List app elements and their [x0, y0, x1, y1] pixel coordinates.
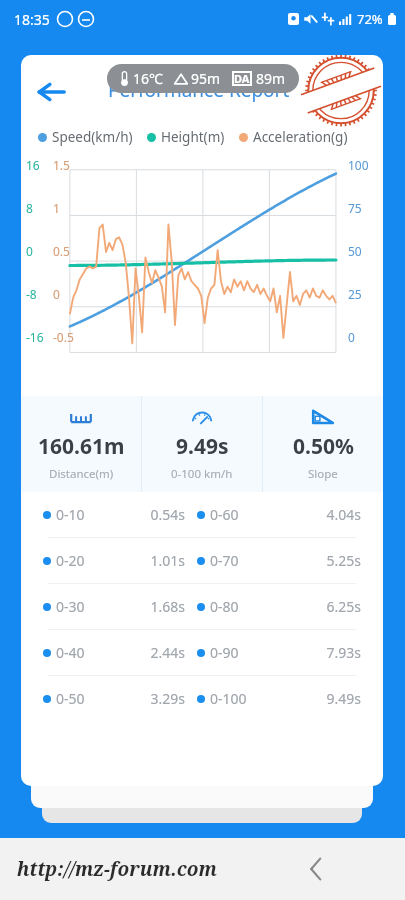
staticText: 3.29s — [129, 689, 185, 708]
staticText: 95m — [191, 69, 221, 88]
staticText: 89m — [256, 69, 286, 88]
staticText: 1.68s — [129, 597, 185, 616]
staticText: 7.93s — [305, 643, 361, 662]
staticText: 100 — [348, 157, 369, 173]
staticText: 6.25s — [305, 597, 361, 616]
button[interactable]: 16℃ — [107, 64, 299, 93]
button[interactable]: 0-20 — [21, 538, 383, 583]
button[interactable]: 0-40 — [21, 630, 383, 675]
staticText: 0.54s — [129, 505, 185, 524]
staticText: 0 — [26, 243, 33, 259]
staticText: 75 — [348, 200, 362, 216]
button[interactable]: 0-50 — [21, 676, 383, 721]
staticText: 16℃ — [133, 69, 163, 88]
staticText: -8 — [26, 286, 37, 302]
staticText: -16 — [26, 329, 44, 345]
staticText: 0-90 — [210, 643, 239, 662]
button[interactable]: 0-10 — [21, 492, 383, 537]
staticText: 18:35 — [14, 10, 50, 29]
staticText: 50 — [348, 243, 362, 259]
staticText: 9.49s — [305, 689, 361, 708]
staticText: Speed(km/h) — [52, 128, 133, 146]
button[interactable]: Back — [29, 70, 73, 114]
button[interactable]: Height(m) — [147, 128, 225, 146]
staticText: 0.5 — [53, 243, 70, 259]
staticText: 0-70 — [210, 551, 239, 570]
staticText: 0-20 — [56, 551, 85, 570]
button[interactable]: 9.49s — [142, 396, 262, 492]
staticText: 0-100 km/h — [171, 466, 233, 482]
staticText: 0-60 — [210, 505, 239, 524]
staticText: 1 — [53, 200, 60, 216]
staticText: 2.44s — [129, 643, 185, 662]
staticText: 0.50% — [293, 432, 354, 461]
staticText: 8 — [26, 200, 33, 216]
staticText: Acceleration(g) — [253, 128, 348, 146]
staticText: 9.49s — [176, 432, 229, 461]
staticText: 160.61m — [38, 432, 125, 461]
button[interactable]: Speed(km/h) — [38, 128, 133, 146]
staticText: Slope — [308, 466, 338, 482]
staticText: 1.5 — [53, 157, 70, 173]
staticText: 0-30 — [56, 597, 85, 616]
staticText: -0.5 — [53, 329, 74, 345]
button[interactable]: 160.61m — [21, 396, 141, 492]
staticText: 0-100 — [210, 689, 247, 708]
staticText: 5.25s — [305, 551, 361, 570]
button[interactable]: 0-30 — [21, 584, 383, 629]
staticText: Performance Report — [108, 77, 290, 103]
button[interactable]: Back — [295, 848, 337, 890]
staticText: 4.04s — [305, 505, 361, 524]
staticText: 0 — [53, 286, 60, 302]
staticText: 25 — [348, 286, 362, 302]
staticText: http://mz-forum.com — [17, 856, 217, 882]
staticText: 72% — [357, 10, 383, 28]
staticText: 0-80 — [210, 597, 239, 616]
staticText: 0-50 — [56, 689, 85, 708]
staticText: 16 — [26, 157, 40, 173]
staticText: 1.01s — [129, 551, 185, 570]
button[interactable]: 0.50% — [263, 396, 383, 492]
staticText: Distance(m) — [49, 466, 114, 482]
button[interactable]: Acceleration(g) — [239, 128, 348, 146]
staticText: 0 — [348, 329, 355, 345]
staticText: DA — [234, 71, 250, 86]
staticText: 0-10 — [56, 505, 85, 524]
staticText: Height(m) — [161, 128, 225, 146]
staticText: 0-40 — [56, 643, 85, 662]
